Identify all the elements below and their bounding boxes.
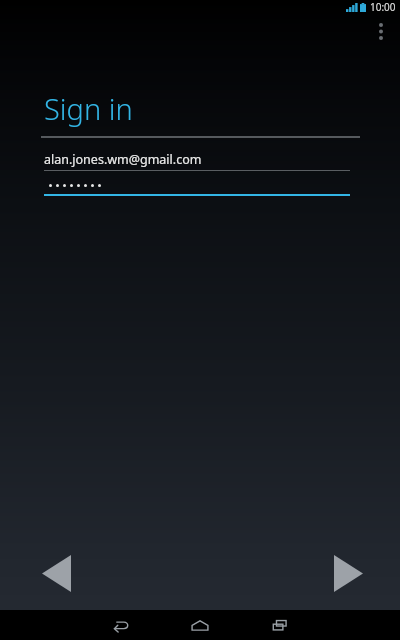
button[interactable]: Next (318, 543, 378, 603)
button[interactable]: Home (160, 610, 240, 640)
button[interactable]: Back (80, 610, 160, 640)
button[interactable]: Recent apps (240, 610, 320, 640)
button[interactable]: alan.jones.wm@gmail.com (44, 149, 350, 170)
button[interactable]: Previous (26, 543, 86, 603)
staticText: 10:00 (370, 0, 396, 14)
button[interactable]: More options (364, 14, 398, 48)
staticText: alan.jones.wm@gmail.com (44, 151, 202, 168)
staticText: Sign in (44, 89, 133, 128)
button[interactable] (44, 177, 350, 194)
